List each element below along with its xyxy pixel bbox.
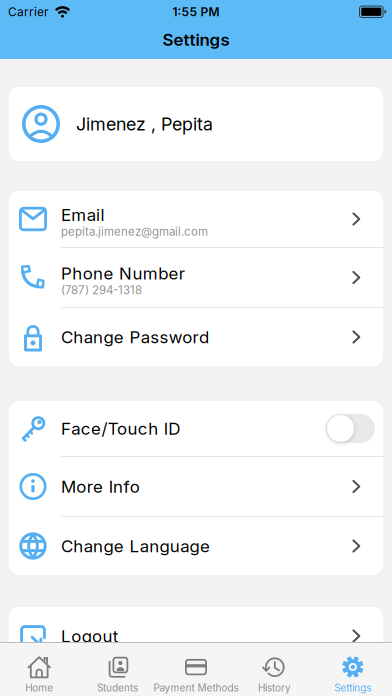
staticText: Phone Number bbox=[61, 263, 185, 283]
staticText: Home bbox=[25, 682, 53, 694]
staticText: pepita.jimenez@gmail.com bbox=[61, 225, 208, 238]
staticText: Settings bbox=[334, 682, 371, 694]
button[interactable]: History bbox=[235, 654, 314, 694]
button[interactable]: Jimenez , Pepita bbox=[9, 87, 383, 161]
staticText: Face/Touch ID bbox=[61, 418, 180, 439]
staticText: Carrier bbox=[8, 5, 49, 19]
button[interactable]: Logout bbox=[9, 607, 383, 665]
button[interactable]: Change Password bbox=[9, 308, 383, 366]
button[interactable]: Payment Methods bbox=[157, 654, 235, 694]
button[interactable]: More Info bbox=[9, 457, 383, 516]
staticText: Change Language bbox=[61, 536, 210, 556]
staticText: More Info bbox=[61, 476, 140, 497]
staticText: Change Password bbox=[61, 327, 209, 347]
staticText: Email bbox=[61, 205, 104, 225]
button[interactable]: Email bbox=[9, 191, 383, 247]
staticText: (787) 294-1318 bbox=[61, 283, 142, 297]
staticText: Jimenez , Pepita bbox=[76, 113, 213, 135]
button[interactable]: Change Language bbox=[9, 517, 383, 575]
button[interactable]: Phone Number bbox=[9, 248, 383, 307]
staticText: Logout bbox=[61, 626, 119, 646]
staticText: Students bbox=[97, 682, 138, 694]
staticText: Payment Methods bbox=[153, 682, 238, 694]
button[interactable]: Settings bbox=[314, 654, 392, 694]
button[interactable]: Face/Touch ID bbox=[326, 414, 375, 443]
staticText: Settings bbox=[162, 29, 229, 50]
staticText: History bbox=[258, 682, 291, 694]
button[interactable]: Students bbox=[78, 654, 157, 694]
staticText: 1:55 PM bbox=[172, 5, 219, 19]
button[interactable]: Home bbox=[0, 654, 78, 694]
